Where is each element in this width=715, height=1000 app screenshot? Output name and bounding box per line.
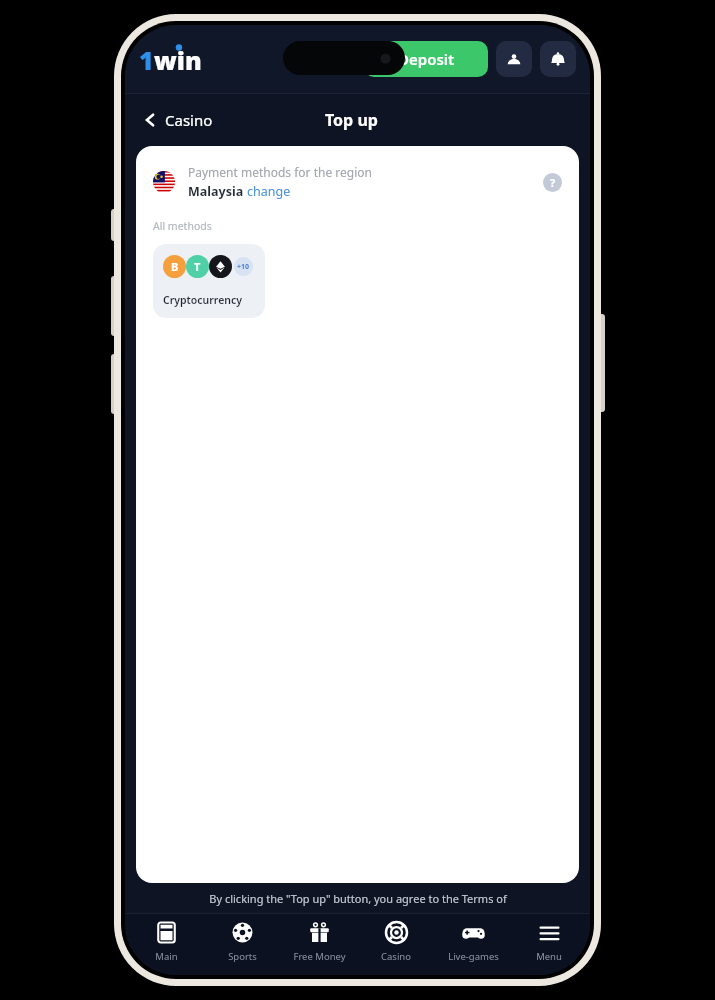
staticText: B bbox=[171, 259, 179, 274]
staticText: Menu bbox=[536, 950, 562, 963]
button[interactable]: B bbox=[153, 244, 265, 318]
staticText: Casino bbox=[381, 950, 411, 963]
staticText: All methods bbox=[153, 219, 212, 233]
staticText: Free Money bbox=[293, 950, 346, 963]
staticText: Malaysia bbox=[188, 183, 247, 200]
button[interactable]: change bbox=[247, 183, 291, 200]
staticText: Sports bbox=[228, 950, 257, 963]
button[interactable]: Menu bbox=[513, 920, 585, 975]
button[interactable]: Casino bbox=[360, 920, 432, 975]
button[interactable]: Notifications bbox=[540, 41, 576, 77]
button[interactable]: Sports bbox=[206, 920, 278, 975]
staticText: change bbox=[247, 183, 291, 200]
staticText: Casino bbox=[165, 110, 213, 130]
staticText: Live-games bbox=[448, 950, 499, 963]
staticText: ? bbox=[550, 175, 556, 190]
staticText: Top up bbox=[325, 109, 378, 131]
staticText: Deposit bbox=[398, 49, 455, 69]
button[interactable]: Main bbox=[130, 920, 202, 975]
button[interactable]: 1win home bbox=[139, 43, 202, 75]
staticText: Payment methods for the region bbox=[188, 164, 372, 180]
button[interactable]: Profile bbox=[496, 41, 532, 77]
staticText: win bbox=[154, 43, 202, 75]
button[interactable]: Help bbox=[543, 173, 562, 192]
button[interactable]: Casino bbox=[137, 104, 219, 136]
button[interactable]: Live-games bbox=[437, 920, 509, 975]
staticText: Main bbox=[155, 950, 178, 963]
staticText: By clicking the "Top up" button, you agr… bbox=[209, 891, 507, 906]
staticText: +10 bbox=[237, 262, 250, 272]
staticText: Cryptocurrency bbox=[163, 293, 243, 307]
button[interactable]: Free Money bbox=[283, 920, 355, 975]
staticText: 1 bbox=[139, 43, 154, 75]
button[interactable]: Deposit bbox=[364, 41, 488, 77]
staticText: T bbox=[194, 259, 201, 274]
